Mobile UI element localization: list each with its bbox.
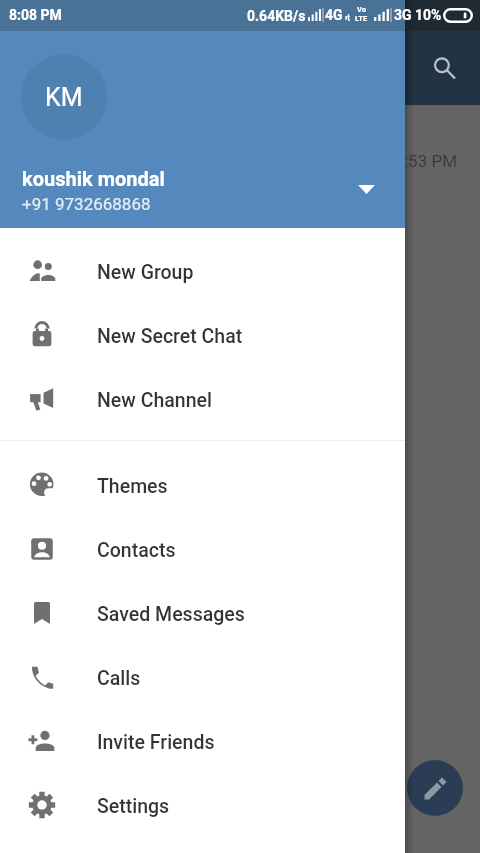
staticText: 4G [325, 7, 343, 23]
staticText: ıţ [345, 13, 350, 22]
button[interactable]: New Channel [0, 367, 405, 431]
staticText: Saved Messages [97, 603, 245, 626]
staticText: KM [45, 83, 83, 112]
button[interactable]: New Group [0, 239, 405, 303]
staticText: New Group [97, 261, 194, 284]
staticText: New Secret Chat [97, 325, 243, 348]
button[interactable]: Themes [0, 453, 405, 517]
staticText: Invite Friends [97, 731, 215, 754]
button[interactable]: New message [407, 760, 463, 816]
button[interactable]: New Secret Chat [0, 303, 405, 367]
staticText: Contacts [97, 539, 176, 562]
button[interactable]: Search [421, 45, 467, 91]
staticText: New Channel [97, 389, 212, 412]
button[interactable]: Contacts [0, 517, 405, 581]
staticText: LTE [355, 14, 368, 23]
staticText: 0.64KB/s [247, 8, 306, 24]
staticText: Vo [357, 5, 366, 14]
staticText: 8:08 PM [9, 7, 62, 23]
button[interactable]: Switch account [344, 167, 389, 212]
button[interactable]: Settings [0, 773, 405, 837]
staticText: :53 PM [404, 151, 458, 171]
staticText: 3G 10% [394, 7, 442, 23]
button[interactable]: Invite Friends [0, 709, 405, 773]
staticText: +91 9732668868 [22, 194, 151, 214]
staticText: Calls [97, 667, 141, 690]
staticText: koushik mondal [22, 167, 165, 190]
button[interactable]: Profile photo [21, 54, 107, 140]
staticText: Themes [97, 475, 168, 498]
button[interactable]: Saved Messages [0, 581, 405, 645]
staticText: Settings [97, 795, 170, 818]
button[interactable]: Calls [0, 645, 405, 709]
